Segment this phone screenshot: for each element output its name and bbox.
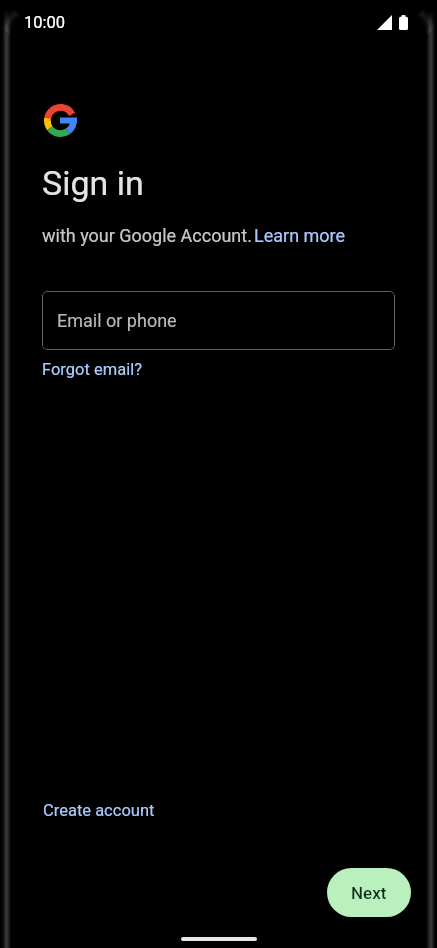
- button[interactable]: Email or phone: [42, 291, 395, 350]
- staticText: with your Google Account.: [42, 225, 257, 246]
- staticText: Email or phone: [57, 310, 177, 331]
- staticText: Forgot email?: [42, 360, 142, 379]
- button[interactable]: Next: [327, 868, 411, 917]
- staticText: Sign in: [42, 163, 144, 203]
- button[interactable]: Learn more: [254, 225, 346, 246]
- staticText: Learn more: [254, 225, 346, 246]
- other: Mobile signal: [377, 15, 392, 30]
- staticText: 10:00: [24, 13, 66, 32]
- staticText: Next: [351, 883, 387, 903]
- staticText: Create account: [43, 801, 155, 820]
- other: Battery: [399, 15, 408, 30]
- button[interactable]: Create account: [43, 801, 155, 820]
- button[interactable]: Forgot email?: [42, 360, 142, 379]
- other: Google: [44, 104, 77, 137]
